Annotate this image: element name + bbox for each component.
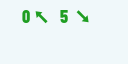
other: Download speed [76, 10, 90, 24]
other: Upload speed [34, 10, 48, 24]
staticText: 0 [22, 5, 31, 27]
staticText: 5 [60, 5, 69, 27]
